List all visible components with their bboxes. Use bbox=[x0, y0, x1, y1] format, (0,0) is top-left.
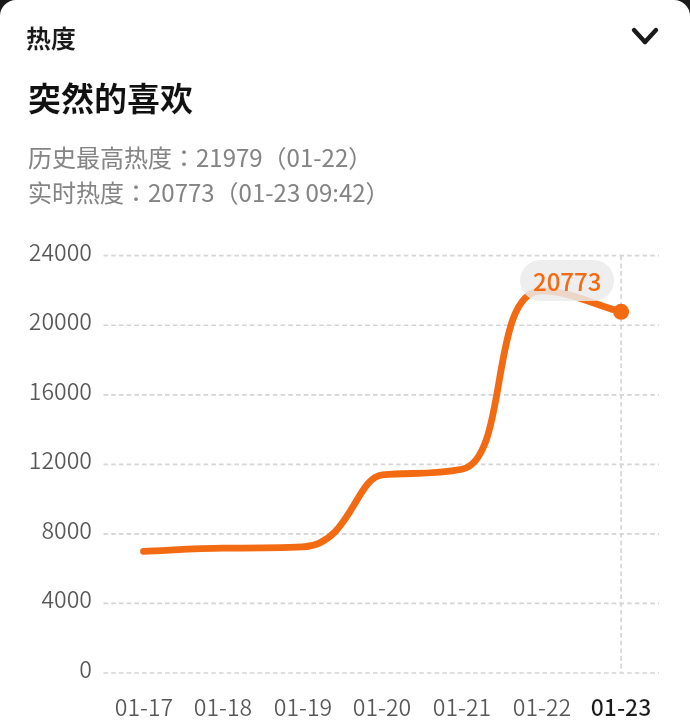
staticText: 4000 bbox=[0, 581, 92, 614]
staticText: 01-18 bbox=[178, 689, 268, 722]
staticText: 01-17 bbox=[99, 689, 189, 722]
staticText: 01-22 bbox=[497, 689, 587, 722]
staticText: 历史最高热度：21979（01-22） bbox=[28, 139, 373, 174]
staticText: 突然的喜欢 bbox=[28, 73, 193, 121]
staticText: 12000 bbox=[0, 442, 92, 475]
staticText: 20773 bbox=[533, 263, 602, 298]
staticText: 0 bbox=[0, 651, 92, 684]
staticText: 热度 bbox=[26, 19, 77, 55]
button[interactable]: Collapse bbox=[623, 14, 667, 58]
button[interactable]: 20773 bbox=[520, 260, 614, 301]
staticText: 01-21 bbox=[417, 689, 507, 722]
staticText: 24000 bbox=[0, 234, 92, 267]
staticText: 20000 bbox=[0, 303, 92, 336]
staticText: 01-19 bbox=[258, 689, 348, 722]
staticText: 8000 bbox=[0, 512, 92, 545]
staticText: 实时热度：20773（01-23 09:42） bbox=[28, 174, 390, 209]
staticText: 01-23 bbox=[576, 689, 666, 722]
staticText: 01-20 bbox=[337, 689, 427, 722]
staticText: 16000 bbox=[0, 373, 92, 406]
